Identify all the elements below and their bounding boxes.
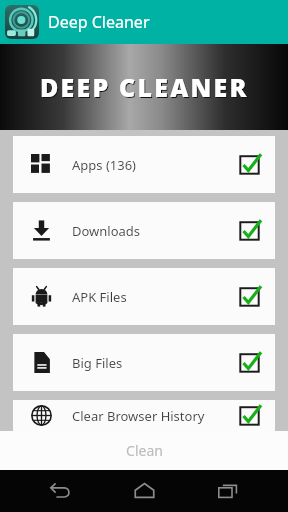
staticText: APK Files xyxy=(72,288,127,306)
button[interactable]: Home xyxy=(120,470,168,512)
button[interactable]: Clean xyxy=(0,431,288,470)
staticText: Deep Cleaner xyxy=(48,11,150,33)
button[interactable]: Recent apps xyxy=(204,470,252,512)
button[interactable]: Downloads xyxy=(13,202,275,259)
staticText: Big Files xyxy=(72,354,123,372)
button[interactable]: Clear Browser History xyxy=(13,400,275,431)
staticText: Clean xyxy=(126,441,163,460)
button[interactable]: Back xyxy=(36,470,84,512)
button[interactable]: Big Files xyxy=(13,334,275,391)
staticText: DEEP CLEANER xyxy=(40,70,249,104)
staticText: Clear Browser History xyxy=(72,407,205,425)
staticText: DEEP CLEANER xyxy=(41,71,250,105)
staticText: Apps (136) xyxy=(72,156,137,174)
button[interactable]: APK Files xyxy=(13,268,275,325)
staticText: Downloads xyxy=(72,222,141,240)
button[interactable]: Apps (136) xyxy=(13,136,275,193)
